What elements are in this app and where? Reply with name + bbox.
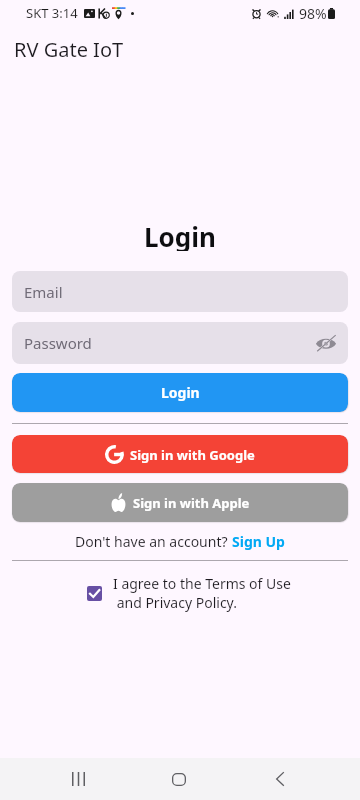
staticText: RV Gate IoT <box>14 36 124 62</box>
staticText: Login <box>144 219 216 251</box>
staticText: Email <box>24 282 63 302</box>
staticText: Don't have an account? <box>75 532 232 551</box>
staticText: 98% <box>299 4 327 23</box>
button[interactable]: Recents <box>54 758 102 800</box>
button[interactable]: Back <box>256 758 304 800</box>
staticText: Login <box>161 383 200 402</box>
button[interactable]: Sign Up <box>232 532 285 551</box>
button[interactable]: Password <box>12 322 348 364</box>
staticText: and Privacy Policy. <box>113 593 237 612</box>
staticText: I agree to the Terms of Use <box>113 574 291 593</box>
button[interactable]: I agree checkbox <box>87 586 102 601</box>
button[interactable]: Email <box>12 271 348 312</box>
button[interactable]: Sign in with Google <box>12 435 348 473</box>
staticText: SKT 3:14 <box>26 4 78 22</box>
staticText: Sign in with Apple <box>133 494 250 512</box>
button[interactable]: Login <box>12 373 348 412</box>
staticText: Sign Up <box>232 532 285 551</box>
button[interactable]: Toggle password visibility <box>315 334 337 352</box>
button[interactable]: Home <box>155 758 203 800</box>
staticText: Password <box>24 333 92 353</box>
staticText: Sign in with Google <box>130 446 255 464</box>
button[interactable]: Sign in with Apple <box>12 483 348 522</box>
